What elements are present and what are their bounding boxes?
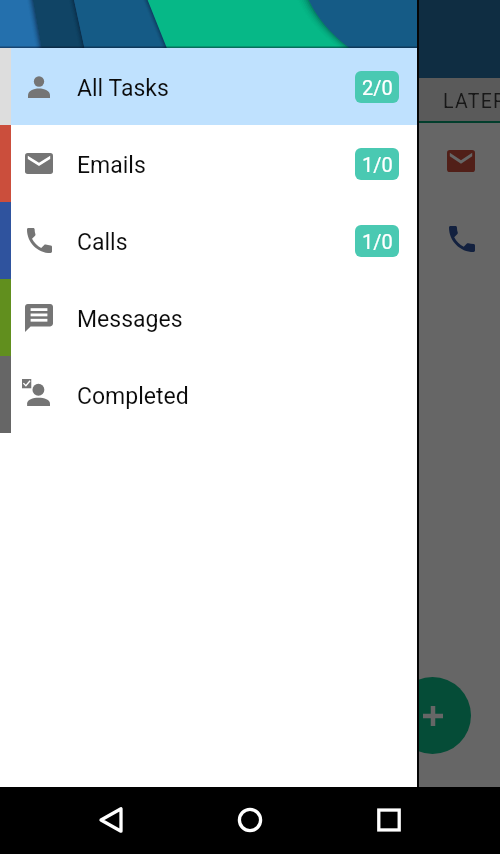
button[interactable]: LATER bbox=[443, 80, 500, 123]
staticText: Emails bbox=[77, 152, 146, 179]
staticText: LATER bbox=[443, 90, 500, 113]
button[interactable]: Emails bbox=[0, 125, 417, 202]
staticText: 2/0 bbox=[362, 76, 393, 99]
button[interactable]: Home bbox=[225, 795, 275, 845]
button[interactable]: Back bbox=[86, 795, 136, 845]
button[interactable]: Messages bbox=[0, 279, 417, 356]
staticText: Messages bbox=[77, 306, 183, 333]
staticText: Calls bbox=[77, 229, 128, 256]
button[interactable]: Add task bbox=[394, 677, 471, 754]
button[interactable]: Completed bbox=[0, 356, 417, 433]
staticText: 1/0 bbox=[362, 153, 393, 176]
staticText: Completed bbox=[77, 383, 189, 410]
button[interactable]: Recent apps bbox=[364, 795, 414, 845]
button[interactable]: All Tasks bbox=[0, 48, 417, 125]
button[interactable]: Calls bbox=[0, 202, 417, 279]
staticText: All Tasks bbox=[77, 75, 169, 102]
staticText: 1/0 bbox=[362, 230, 393, 253]
